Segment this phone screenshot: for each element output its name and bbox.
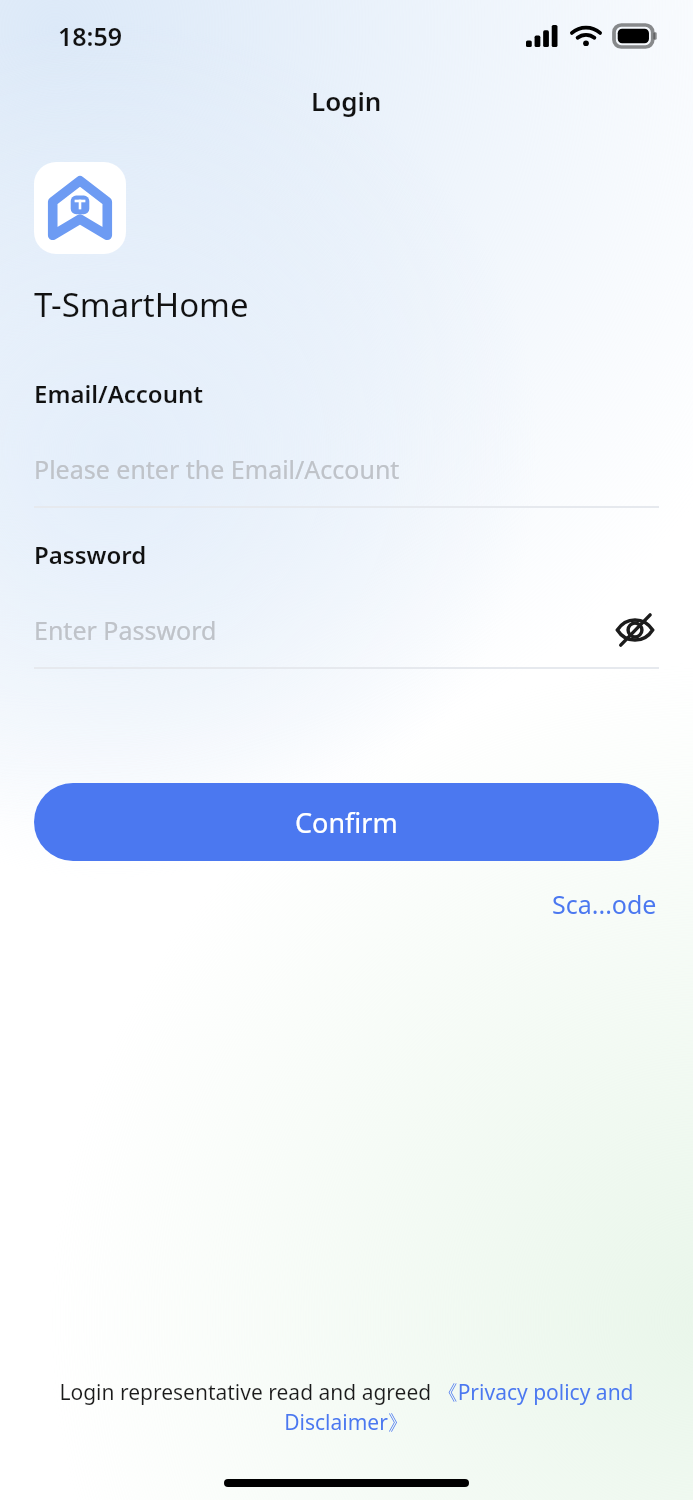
staticText: Please enter the Email/Account xyxy=(34,452,400,486)
staticText: Password xyxy=(34,538,147,571)
button[interactable]: Show password xyxy=(611,609,659,651)
button[interactable]: Login representative read and agreed 《Pr… xyxy=(34,1378,659,1437)
button[interactable]: Sca...ode xyxy=(550,881,659,927)
staticText: Email/Account xyxy=(34,377,204,410)
button[interactable]: Password xyxy=(34,538,659,669)
staticText: T-SmartHome xyxy=(34,282,249,327)
staticText: Login xyxy=(311,83,382,118)
staticText: Sca...ode xyxy=(552,887,657,921)
staticText: 18:59 xyxy=(58,19,123,53)
button[interactable]: Email/Account xyxy=(34,377,659,508)
button[interactable]: Confirm xyxy=(34,783,659,861)
staticText: Enter Password xyxy=(34,613,217,647)
staticText: Confirm xyxy=(295,804,398,841)
button[interactable]: T-SmartHome xyxy=(34,162,126,254)
staticText: Login representative read and agreed 《Pr… xyxy=(34,1378,659,1437)
